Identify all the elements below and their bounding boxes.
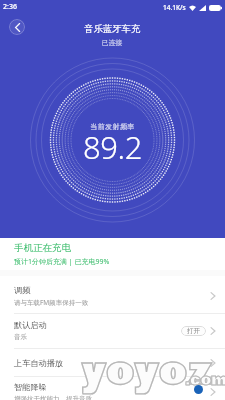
staticText: 上车自动播放 [14, 358, 64, 368]
staticText: 14.1K/s [163, 3, 186, 12]
staticText: 已连接 [102, 38, 123, 47]
staticText: 智能降噪 [14, 382, 47, 392]
other: 调频 [210, 292, 216, 300]
staticText: 默认启动 [14, 320, 47, 330]
staticText: 请与车载FM频率保持一致 [14, 298, 89, 307]
staticText: 调频 [14, 285, 31, 295]
staticText: 音乐 [14, 333, 27, 341]
staticText: 当前发射频率 [0, 122, 225, 131]
other: 上车自动播放 [210, 359, 216, 367]
button[interactable]: Back [9, 19, 25, 35]
staticText: 音乐蓝牙车充 [84, 23, 141, 35]
staticText: .com [185, 369, 225, 391]
button[interactable]: 默认启动 [0, 313, 225, 348]
staticText: yoyoz [82, 344, 213, 400]
staticText: 增强抗干扰能力，提升音质 [14, 395, 92, 400]
staticText: 手机正在充电 [14, 242, 71, 254]
button[interactable]: 智能降噪 [0, 376, 225, 400]
button[interactable]: 打开 [181, 326, 206, 336]
button[interactable]: 调频 [0, 278, 225, 313]
staticText: 打开 [187, 327, 200, 335]
staticText: 预计1分钟后充满 | 已充电99% [14, 257, 110, 267]
staticText: yoyoz [82, 344, 213, 400]
staticText: 2:36 [3, 2, 17, 12]
other: 智能降噪 [210, 388, 216, 396]
staticText: .com [185, 369, 225, 391]
button[interactable]: 上车自动播放 [0, 348, 225, 377]
other: 默认启动 [210, 327, 216, 335]
staticText: 89.2 [0, 126, 225, 168]
